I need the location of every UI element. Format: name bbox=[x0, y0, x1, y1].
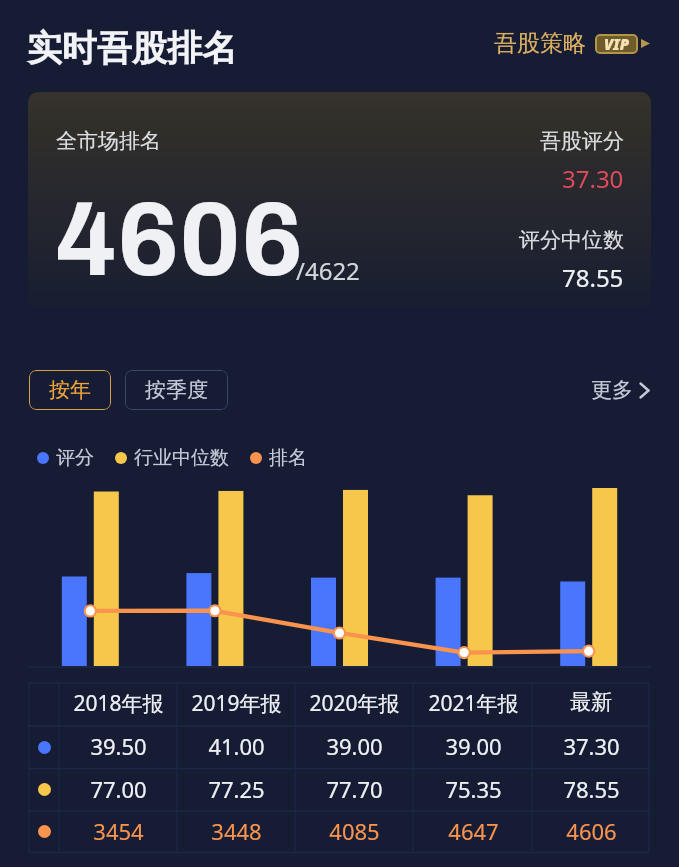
staticText: 3454 bbox=[93, 816, 144, 846]
staticText: 2021年报 bbox=[428, 689, 519, 718]
staticText: 全市场排名 bbox=[56, 128, 161, 154]
staticText: 37.30 bbox=[562, 162, 624, 195]
staticText: 按年 bbox=[49, 377, 91, 403]
staticText: 37.30 bbox=[563, 731, 620, 761]
staticText: 吾股评分 bbox=[540, 128, 624, 154]
staticText: 2020年报 bbox=[309, 689, 400, 718]
staticText: 行业中位数 bbox=[134, 446, 229, 470]
staticText: 3448 bbox=[211, 816, 262, 846]
staticText: 排名 bbox=[269, 446, 307, 470]
staticText: 75.35 bbox=[445, 774, 502, 804]
staticText: 77.00 bbox=[90, 774, 147, 804]
staticText: 4606 bbox=[55, 184, 303, 297]
staticText: VIP bbox=[604, 34, 629, 54]
staticText: 77.70 bbox=[326, 774, 383, 804]
staticText: 77.25 bbox=[208, 774, 265, 804]
staticText: 2018年报 bbox=[73, 689, 164, 718]
button[interactable]: 更多 bbox=[591, 377, 650, 403]
staticText: 4606 bbox=[566, 816, 617, 846]
button[interactable]: 按季度 bbox=[125, 370, 228, 410]
staticText: 39.00 bbox=[326, 731, 383, 761]
staticText: 78.55 bbox=[563, 774, 620, 804]
button[interactable]: 吾股策略 bbox=[494, 29, 650, 58]
staticText: 评分中位数 bbox=[519, 227, 624, 253]
staticText: 评分 bbox=[56, 446, 94, 470]
staticText: 4647 bbox=[448, 816, 499, 846]
staticText: 2019年报 bbox=[191, 689, 282, 718]
button[interactable]: 按年 bbox=[29, 370, 111, 410]
staticText: 39.50 bbox=[90, 731, 147, 761]
staticText: /4622 bbox=[296, 254, 360, 287]
staticText: 按季度 bbox=[145, 377, 208, 403]
staticText: 更多 bbox=[591, 377, 633, 403]
staticText: 实时吾股排名 bbox=[27, 26, 237, 70]
staticText: 41.00 bbox=[208, 731, 265, 761]
staticText: 39.00 bbox=[445, 731, 502, 761]
staticText: 吾股策略 bbox=[494, 29, 586, 58]
staticText: 78.55 bbox=[562, 261, 624, 294]
staticText: 4085 bbox=[329, 816, 380, 846]
staticText: 最新 bbox=[570, 689, 612, 715]
